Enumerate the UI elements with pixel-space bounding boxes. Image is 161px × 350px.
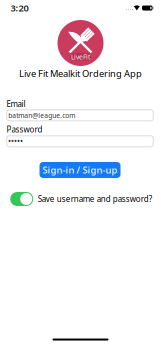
staticText: Email — [6, 99, 25, 109]
staticText: Save username and password? — [38, 194, 152, 204]
staticText: 3:20 — [10, 2, 28, 14]
textField[interactable]: batman@league.com — [8, 111, 154, 120]
staticText: Password — [6, 124, 42, 135]
staticText: Live Fit Mealkit Ordering App — [19, 67, 142, 80]
staticText: Sign-in / Sign-up — [42, 164, 117, 176]
button[interactable]: Save username and password? — [10, 192, 152, 206]
staticText: LiveFit — [71, 52, 90, 61]
button[interactable]: Sign-in / Sign-up — [39, 162, 120, 178]
secureTextField[interactable]: 12345 — [8, 137, 154, 146]
staticText: ••••• — [8, 137, 23, 146]
staticText: batman@league.com — [8, 111, 75, 120]
